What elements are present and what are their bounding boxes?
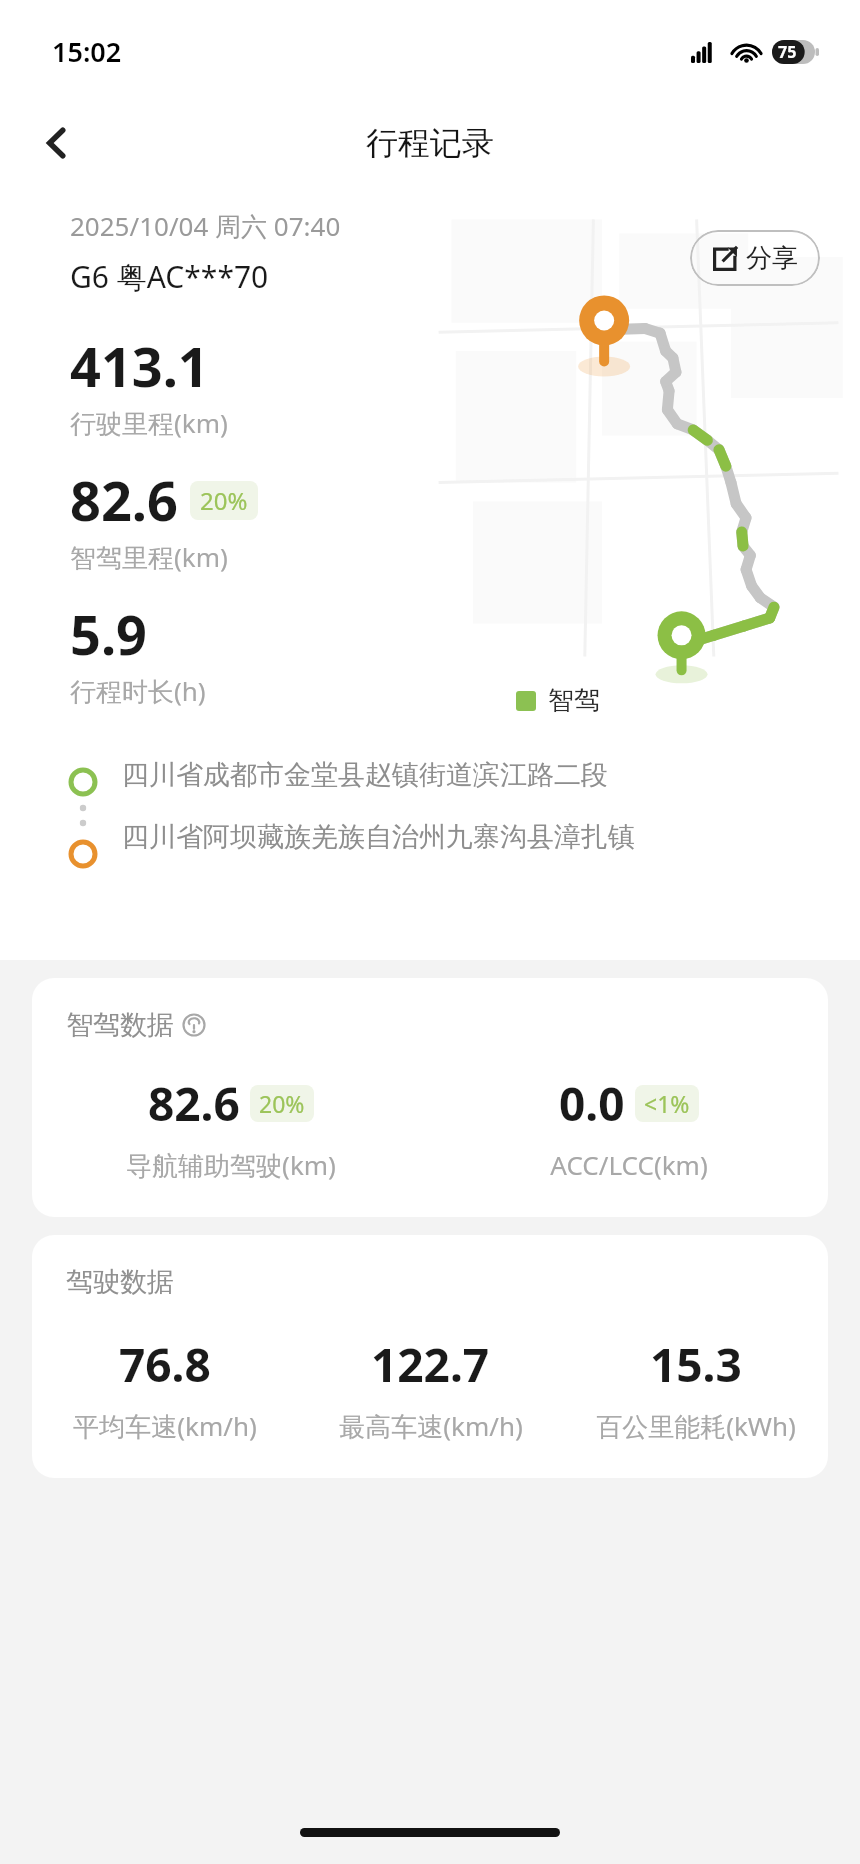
staticText: 最高车速(km/h)	[339, 1408, 523, 1444]
staticText: 2025/10/04 周六 07:40	[70, 208, 341, 244]
staticText: 122.7	[371, 1333, 490, 1396]
staticText: 平均车速(km/h)	[73, 1408, 257, 1444]
staticText: 四川省阿坝藏族羌族自治州九寨沟县漳扎镇	[122, 820, 635, 854]
staticText: 5.9	[70, 597, 147, 671]
staticText: 导航辅助驾驶(km)	[126, 1147, 336, 1183]
staticText: 行程记录	[366, 123, 494, 163]
staticText: 15.3	[650, 1333, 742, 1396]
staticText: 413.1	[70, 329, 209, 403]
staticText: 20%	[200, 484, 248, 517]
staticText: 智驾	[548, 684, 600, 717]
staticText: 0.0	[559, 1072, 625, 1135]
staticText: 分享	[746, 242, 798, 275]
staticText: 82.6	[148, 1072, 240, 1135]
staticText: 智驾里程(km)	[70, 539, 228, 575]
staticText: 20%	[259, 1088, 305, 1119]
staticText: 百公里能耗(kWh)	[596, 1408, 796, 1444]
button[interactable]: 分享	[690, 230, 820, 286]
staticText: G6 粤AC***70	[70, 256, 269, 297]
button[interactable]: 智驾数据	[32, 978, 828, 1217]
staticText: <1%	[644, 1088, 690, 1119]
button[interactable]: Back	[24, 110, 90, 176]
staticText: 驾驶数据	[66, 1265, 174, 1299]
staticText: 四川省成都市金堂县赵镇街道滨江路二段	[122, 758, 608, 792]
staticText: 智驾数据	[66, 1008, 174, 1042]
staticText: 行程时长(h)	[70, 673, 206, 709]
staticText: 76.8	[119, 1333, 211, 1396]
staticText: 75	[778, 41, 797, 63]
staticText: ACC/LCC(km)	[550, 1147, 708, 1182]
staticText: 82.6	[70, 463, 178, 537]
staticText: 行驶里程(km)	[70, 405, 228, 441]
staticText: 15:02	[52, 33, 122, 70]
button[interactable]: 驾驶数据	[32, 1235, 828, 1478]
